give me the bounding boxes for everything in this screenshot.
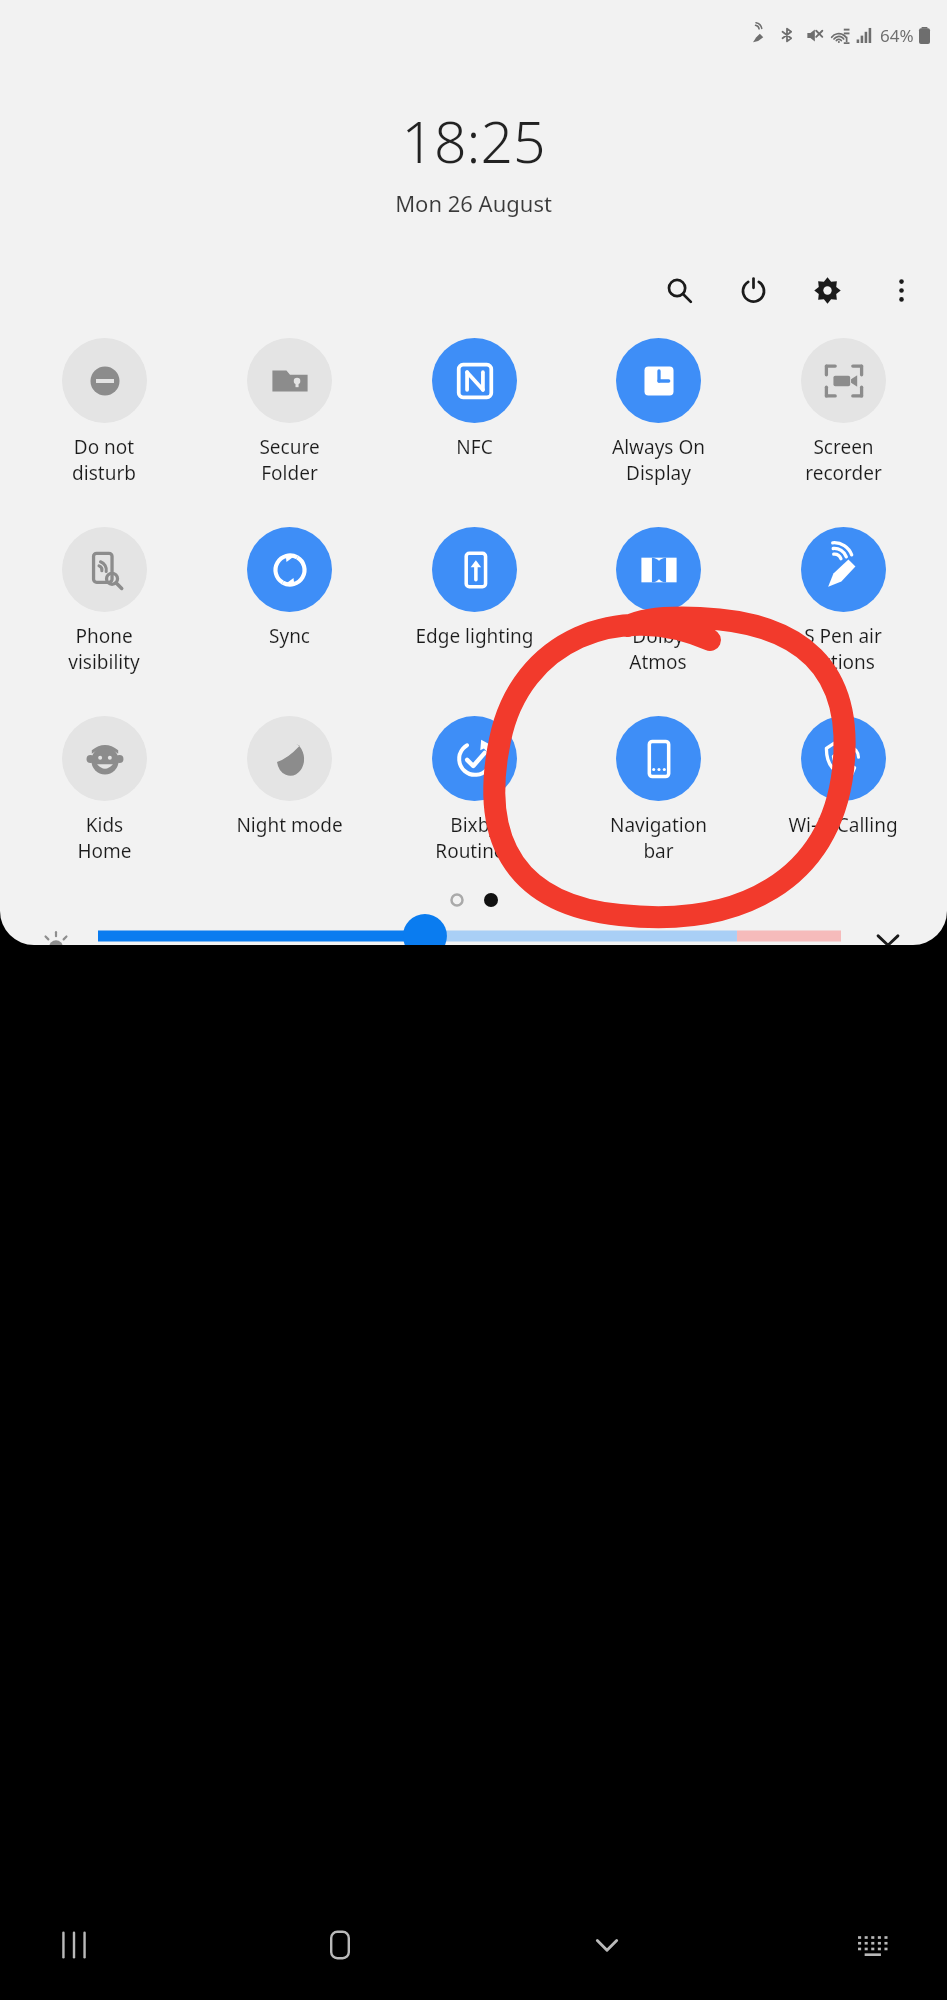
button[interactable]: Keyboard <box>835 1907 911 1983</box>
staticText: Sync <box>269 623 310 649</box>
button[interactable]: S Pen air actions <box>756 523 930 678</box>
button[interactable]: Secure Folder <box>202 334 376 489</box>
button[interactable]: Screen recorder <box>756 334 930 489</box>
button[interactable] <box>98 927 841 945</box>
button[interactable]: Do not disturb <box>17 334 191 489</box>
staticText: Navigation bar <box>610 812 707 863</box>
staticText: 18:25 <box>401 102 546 180</box>
staticText: NFC <box>456 434 493 460</box>
button[interactable]: Expand brightness settings <box>865 927 911 945</box>
staticText: Edge lighting <box>415 623 534 649</box>
staticText: Phone visibility <box>68 623 140 674</box>
staticText: Screen recorder <box>805 434 882 485</box>
button[interactable]: Search <box>657 268 701 312</box>
staticText: Always On Display <box>612 434 705 485</box>
button[interactable]: Dolby Atmos <box>571 523 745 678</box>
staticText: Night mode <box>236 812 343 838</box>
button[interactable]: Wi-Fi Calling <box>756 712 930 842</box>
button[interactable]: Power <box>731 268 775 312</box>
button[interactable]: Phone visibility <box>17 523 191 678</box>
button[interactable]: Edge lighting <box>387 523 561 653</box>
staticText: Secure Folder <box>259 434 320 485</box>
staticText: Do not disturb <box>72 434 136 485</box>
button[interactable]: Bixby Routines <box>387 712 561 867</box>
staticText: Wi-Fi Calling <box>788 812 898 838</box>
button[interactable]: Navigation bar <box>571 712 745 867</box>
button[interactable]: More options <box>879 268 923 312</box>
staticText: Kids Home <box>77 812 132 863</box>
button[interactable]: NFC <box>387 334 561 464</box>
button[interactable]: Back <box>569 1907 645 1983</box>
button[interactable]: Sync <box>202 523 376 653</box>
staticText: Bixby Routines <box>435 812 514 863</box>
staticText: Dolby Atmos <box>629 623 687 674</box>
button[interactable]: Always On Display <box>571 334 745 489</box>
staticText: 64% <box>880 24 914 47</box>
staticText: S Pen air actions <box>804 623 882 674</box>
button[interactable]: Settings <box>805 268 849 312</box>
staticText: Mon 26 August <box>395 188 552 218</box>
button[interactable]: Night mode <box>202 712 376 842</box>
button[interactable]: Recent apps <box>36 1907 112 1983</box>
button[interactable]: Kids Home <box>17 712 191 867</box>
button[interactable]: Home <box>302 1907 378 1983</box>
